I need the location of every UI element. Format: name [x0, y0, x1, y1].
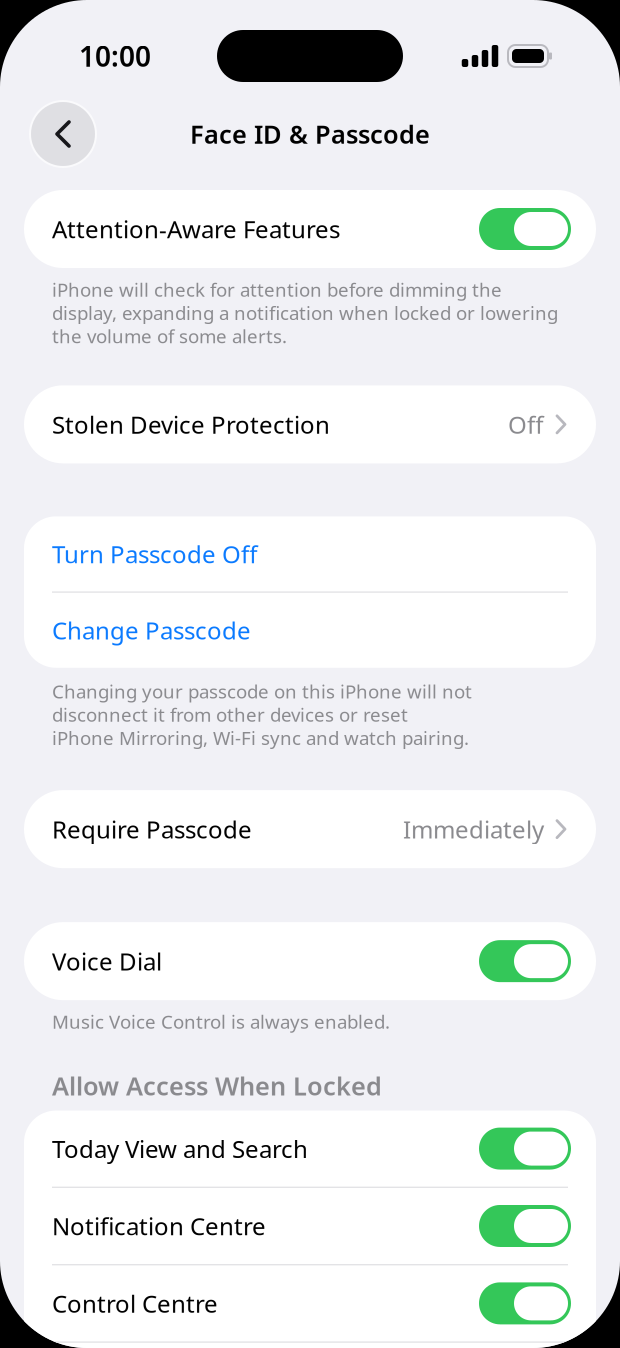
button[interactable]: Back — [29, 100, 97, 168]
button[interactable]: Turn Passcode Off — [24, 516, 596, 591]
staticText: Require Passcode — [52, 813, 252, 845]
staticText: Changing your passcode on this iPhone wi… — [52, 679, 472, 704]
button[interactable]: Change Passcode — [24, 593, 596, 668]
staticText: the volume of some alerts. — [52, 324, 287, 348]
button[interactable]: Today View and Search — [24, 1111, 596, 1187]
staticText: display, expanding a notification when l… — [52, 300, 558, 325]
staticText: iPhone will check for attention before d… — [52, 277, 502, 302]
button[interactable]: Require Passcode — [24, 790, 596, 868]
staticText: Music Voice Control is always enabled. — [52, 1009, 390, 1034]
staticText: Off — [508, 408, 544, 440]
staticText: disconnect it from other devices or rese… — [52, 702, 408, 727]
button[interactable]: Voice Dial — [24, 922, 596, 1000]
staticText: Control Centre — [52, 1287, 218, 1319]
button[interactable]: Siri — [24, 1343, 596, 1348]
button[interactable]: Notification Centre — [24, 1188, 596, 1264]
staticText: Immediately — [403, 813, 544, 845]
staticText: Voice Dial — [52, 945, 162, 977]
staticText: Today View and Search — [52, 1133, 308, 1164]
staticText: Change Passcode — [52, 614, 251, 646]
staticText: Notification Centre — [52, 1210, 266, 1242]
staticText: Attention-Aware Features — [52, 213, 340, 245]
staticText: Turn Passcode Off — [52, 538, 258, 570]
staticText: 10:00 — [79, 37, 151, 75]
button[interactable]: Stolen Device Protection — [24, 385, 596, 463]
button[interactable]: Attention-Aware Features — [24, 190, 596, 268]
staticText: Stolen Device Protection — [52, 408, 330, 440]
staticText: Face ID & Passcode — [190, 117, 430, 151]
staticText: Allow Access When Locked — [52, 1069, 382, 1102]
staticText: iPhone Mirroring, Wi-Fi sync and watch p… — [52, 725, 469, 750]
button[interactable]: Control Centre — [24, 1265, 596, 1341]
